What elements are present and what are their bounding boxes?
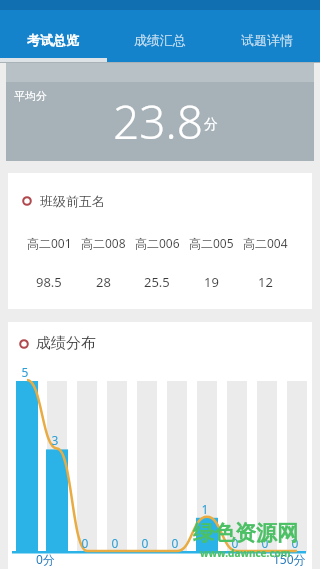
staticText: 0 xyxy=(285,535,305,551)
staticText: 高二004 xyxy=(243,235,288,251)
staticText: 12 xyxy=(258,273,273,291)
staticText: 1 xyxy=(195,501,215,517)
staticText: 高二006 xyxy=(135,235,180,251)
staticText: 试题详情 xyxy=(241,32,293,48)
staticText: 高二001 xyxy=(27,235,72,251)
staticText: 高二005 xyxy=(189,235,234,251)
staticText: 19 xyxy=(204,273,219,291)
staticText: 0 xyxy=(255,535,275,551)
staticText: 0分 xyxy=(36,551,55,567)
staticText: 绿色资源网 xyxy=(193,520,298,546)
staticText: 0 xyxy=(135,535,155,551)
staticText: 0 xyxy=(225,535,245,551)
staticText: 25.5 xyxy=(144,273,170,291)
button[interactable]: 考试总览 xyxy=(0,10,106,62)
staticText: 28 xyxy=(96,273,111,291)
staticText: 5 xyxy=(15,364,35,380)
staticText: 平均分 xyxy=(14,89,47,103)
staticText: 高二008 xyxy=(81,235,126,251)
staticText: 0 xyxy=(165,535,185,551)
staticText: 成绩汇总 xyxy=(134,32,186,48)
staticText: www.dawnce.com xyxy=(200,546,291,560)
button[interactable]: 成绩汇总 xyxy=(106,10,213,62)
staticText: 150分 xyxy=(273,551,306,567)
button[interactable]: 试题详情 xyxy=(213,10,320,62)
staticText: 98.5 xyxy=(36,273,62,291)
staticText: 班级前五名 xyxy=(40,193,105,209)
staticText: 0 xyxy=(105,535,125,551)
staticText: 考试总览 xyxy=(27,32,79,48)
staticText: 0 xyxy=(75,535,95,551)
staticText: 3 xyxy=(45,432,65,448)
staticText: 23.8 xyxy=(113,90,204,153)
staticText: 成绩分布 xyxy=(36,334,96,353)
staticText: 分 xyxy=(204,116,218,134)
